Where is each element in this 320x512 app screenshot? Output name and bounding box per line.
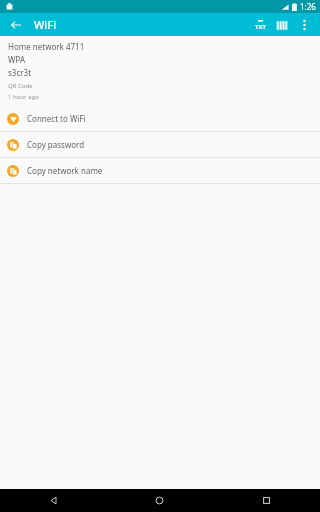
staticText: Copy network name [27,165,103,176]
staticText: 1:26 [300,1,316,12]
staticText: QR Code [8,82,33,90]
button[interactable]: Recents [213,489,320,512]
button[interactable]: Home [106,489,213,512]
staticText: 1 hour ago [8,93,39,101]
staticText: Connect to WiFi [27,113,86,124]
button[interactable]: Show barcode [272,15,292,35]
button[interactable]: Copy network name [0,158,320,183]
button[interactable]: Back [0,489,106,512]
staticText: Home network 4711 [8,41,85,52]
button[interactable]: Show as text [250,15,270,35]
button[interactable]: More options [294,15,314,35]
staticText: Copy password [27,139,85,150]
staticText: WiFi [34,17,57,32]
staticText: WPA [8,54,25,65]
button[interactable]: Copy password [0,132,320,157]
staticText: s3cr3t [8,67,32,78]
button[interactable]: Connect to WiFi [0,106,320,131]
button[interactable]: Back [6,15,26,35]
staticText: TXT [255,23,266,31]
